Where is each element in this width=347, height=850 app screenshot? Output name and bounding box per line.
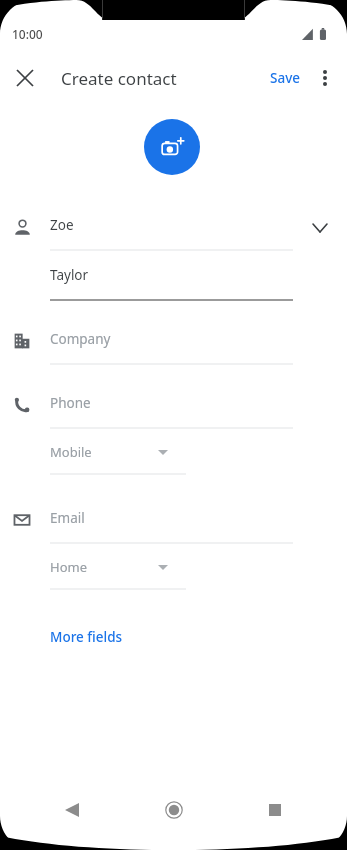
staticText: Email: [50, 509, 85, 527]
staticText: Save: [270, 69, 301, 87]
button[interactable]: Home: [50, 554, 186, 590]
button[interactable]: Company: [50, 325, 293, 365]
button[interactable]: Phone: [50, 389, 293, 429]
button[interactable]: Mobile: [50, 439, 186, 475]
staticText: Company: [50, 330, 111, 348]
button[interactable]: Home: [152, 788, 196, 832]
staticText: Mobile: [50, 443, 92, 461]
staticText: Taylor: [50, 266, 89, 284]
staticText: Create contact: [61, 67, 177, 90]
button[interactable]: Expand name fields: [303, 211, 337, 245]
button[interactable]: More options: [305, 58, 345, 98]
button[interactable]: Recent apps: [253, 788, 297, 832]
button[interactable]: Email: [50, 504, 293, 544]
staticText: Phone: [50, 394, 91, 412]
button[interactable]: Save: [264, 63, 307, 93]
staticText: More fields: [50, 628, 123, 646]
button[interactable]: More fields: [44, 621, 129, 653]
button[interactable]: Close: [3, 56, 47, 100]
button[interactable]: Zoe: [50, 211, 293, 251]
staticText: Zoe: [50, 216, 74, 234]
button[interactable]: Add contact photo: [144, 119, 200, 175]
button[interactable]: Taylor: [50, 261, 293, 301]
staticText: Home: [50, 558, 87, 576]
staticText: 10:00: [12, 26, 43, 42]
button[interactable]: Back: [50, 788, 94, 832]
